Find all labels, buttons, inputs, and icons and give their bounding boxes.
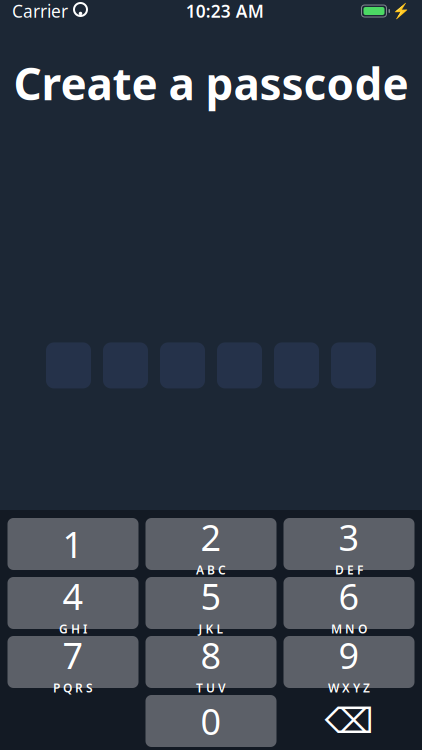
staticText: P Q R S (53, 680, 93, 696)
button[interactable]: 9 (283, 636, 414, 688)
staticText: 1 (62, 520, 83, 568)
button[interactable]: 5 (145, 577, 276, 629)
staticText: 10:23 AM (186, 0, 264, 22)
staticText: 2 (200, 513, 221, 561)
staticText: 8 (200, 631, 221, 679)
staticText: W X Y Z (328, 680, 370, 696)
button[interactable]: 3 (283, 518, 414, 570)
staticText: Create a passcode (13, 54, 408, 112)
staticText: 0 (200, 697, 221, 745)
staticText: 6 (338, 572, 359, 620)
staticText: M N O (331, 621, 367, 637)
button[interactable]: 4 (7, 577, 138, 629)
staticText: ⚡ (392, 3, 410, 19)
staticText: ⌫ (324, 701, 373, 741)
staticText: Carrier (12, 0, 68, 22)
button[interactable]: 6 (283, 577, 414, 629)
staticText: 5 (200, 572, 221, 620)
button[interactable]: Delete (283, 695, 414, 747)
staticText: 4 (62, 572, 83, 620)
button[interactable]: 0 (145, 695, 276, 747)
button[interactable]: 2 (145, 518, 276, 570)
staticText: 7 (62, 631, 83, 679)
button[interactable]: 8 (145, 636, 276, 688)
staticText: J K L (198, 621, 223, 637)
staticText: A B C (196, 562, 226, 578)
button[interactable]: 1 (7, 518, 138, 570)
staticText: 9 (338, 631, 359, 679)
staticText: D E F (335, 562, 363, 578)
button[interactable]: 7 (7, 636, 138, 688)
staticText: G H I (59, 621, 87, 637)
staticText: T U V (196, 680, 226, 696)
staticText: 3 (338, 513, 359, 561)
